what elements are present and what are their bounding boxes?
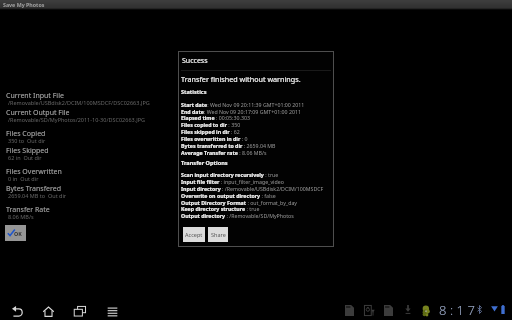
staticText: Keep directory structure : true: [181, 205, 260, 212]
button[interactable]: Accept: [183, 227, 205, 242]
other: Photo: [364, 305, 375, 316]
staticText: 8:17: [439, 301, 479, 319]
staticText: Input directory : /Removable/USBdisk2/DC…: [181, 185, 324, 192]
staticText: Scan input directory recursively : true: [181, 171, 279, 178]
other: Android: [422, 305, 430, 316]
staticText: Files Copied: [6, 129, 46, 139]
staticText: Overwrite on output directory : false: [181, 192, 276, 199]
staticText: 350 to Out dir: [8, 137, 46, 144]
staticText: Transfer Rate: [6, 205, 50, 215]
staticText: Share: [211, 231, 226, 238]
other: Document: [384, 305, 393, 316]
staticText: /Removable/SD/MyPhotos/2011-10-30/DSC026…: [8, 116, 145, 123]
staticText: 62 in Out dir: [8, 154, 42, 161]
staticText: Average Transfer rate : 8.06 MB/s: [181, 149, 267, 156]
staticText: Files skipped in dir : 62: [181, 128, 240, 135]
other: Download: [405, 305, 411, 314]
button[interactable]: OK: [5, 225, 26, 241]
staticText: Save My Photos: [3, 1, 45, 8]
staticText: Elapsed time : 00:05:30.303: [181, 114, 250, 121]
staticText: Files Overwritten: [6, 167, 62, 177]
staticText: End date: Wed Nov 09 20:17:09 GMT+01:00 …: [181, 108, 301, 115]
staticText: 2659.04 MB to Out dir: [8, 192, 67, 199]
staticText: 8.06 MB/s: [8, 213, 34, 220]
staticText: Accept: [185, 231, 203, 238]
button[interactable]: Home: [38, 296, 58, 320]
button[interactable]: Share: [208, 227, 228, 242]
button[interactable]: Back: [7, 296, 27, 320]
staticText: Start date: Wed Nov 09 20:11:39 GMT+01:0…: [181, 101, 305, 108]
staticText: Files Skipped: [6, 146, 49, 156]
staticText: Current Output File: [6, 108, 70, 118]
staticText: Output directory : /Removable/SD/MyPhoto…: [181, 212, 294, 219]
button[interactable]: Menu: [102, 296, 122, 320]
staticText: Statistics: [181, 88, 207, 96]
other: Bluetooth: [477, 305, 482, 314]
staticText: Success: [182, 56, 208, 66]
staticText: Current Input File: [6, 91, 64, 101]
staticText: Input file filter : input_filter_image_v…: [181, 178, 284, 185]
staticText: Bytes Transfered: [6, 184, 62, 194]
staticText: Files overwritten in dir : 0: [181, 135, 248, 142]
other: Battery: [501, 305, 505, 314]
staticText: 0 in Out dir: [8, 175, 39, 182]
other: Document: [345, 305, 354, 316]
staticText: Transfer Options: [181, 159, 228, 167]
staticText: OK: [14, 230, 22, 237]
staticText: Files copied to dir : 350: [181, 121, 241, 128]
staticText: Transfer finished without warnings.: [181, 74, 301, 84]
staticText: /Removable/USBdisk2/DCIM/100MSDCF/DSC026…: [8, 99, 150, 106]
staticText: Output Directory Format : out_format_by_…: [181, 199, 298, 206]
other: Wi-Fi: [491, 305, 498, 312]
staticText: Bytes transferred to dir : 2659.04 MB: [181, 142, 276, 149]
button[interactable]: Recents: [70, 296, 90, 320]
